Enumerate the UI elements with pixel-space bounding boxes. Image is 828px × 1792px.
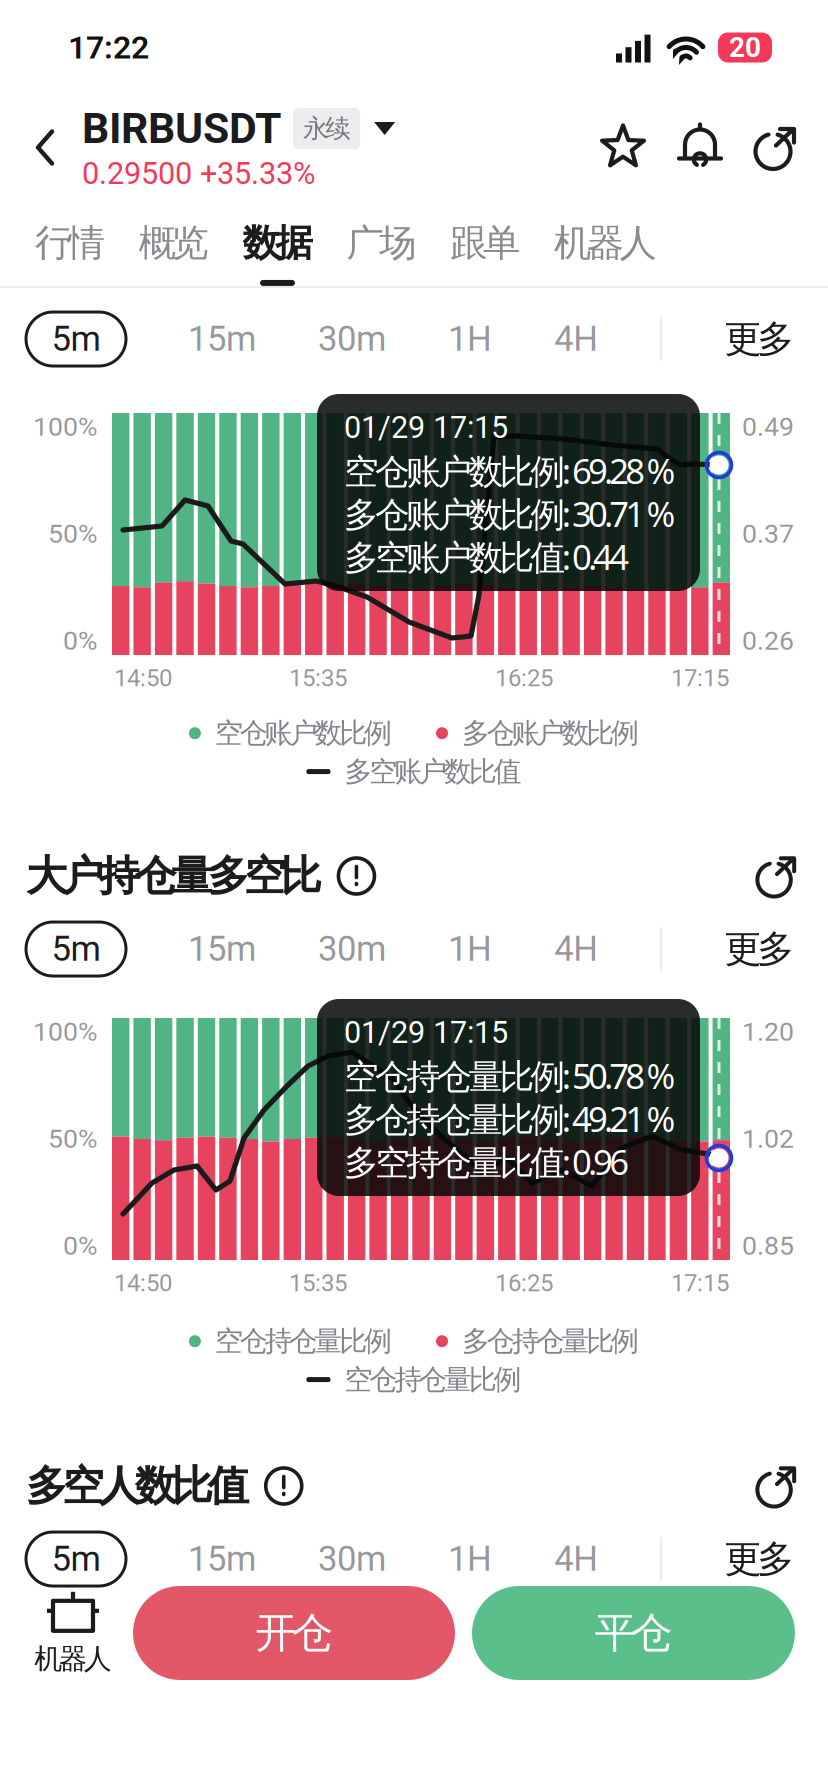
staticText: 概览 — [139, 220, 209, 266]
staticText: 更多 — [724, 1536, 794, 1582]
staticText: 1H — [448, 1539, 492, 1579]
staticText: 30m — [318, 319, 386, 359]
button[interactable]: 机器人 — [18, 1586, 128, 1680]
staticText: 15m — [188, 929, 256, 969]
button[interactable]: Favourite — [586, 122, 662, 172]
button[interactable]: 15m — [188, 1539, 256, 1579]
staticText: 0.26 — [742, 625, 794, 656]
button[interactable]: 15m — [188, 929, 256, 969]
staticText: 多空账户数比值: 0.44 — [344, 533, 629, 579]
staticText: 行情 — [35, 220, 105, 266]
staticText: 空仓账户数比例 — [215, 716, 392, 750]
staticText: 4H — [554, 929, 598, 969]
button[interactable]: Back — [0, 95, 82, 200]
staticText: 0.37 — [742, 518, 794, 549]
staticText: 100% — [33, 411, 98, 442]
staticText: 50% — [48, 518, 98, 549]
button[interactable]: 15m — [188, 319, 256, 359]
button[interactable]: 更多 — [724, 316, 794, 362]
button[interactable]: 4H — [554, 1539, 598, 1579]
button[interactable]: 30m — [318, 929, 386, 969]
button[interactable]: 4H — [554, 929, 598, 969]
staticText: 4H — [554, 319, 598, 359]
staticText: 0.49 — [742, 411, 794, 442]
staticText: 空仓账户数比例: 69.28 % — [344, 447, 675, 493]
staticText: 16:25 — [495, 1269, 553, 1297]
button[interactable]: 开仓 — [133, 1586, 455, 1680]
staticText: 开仓 — [255, 1608, 333, 1658]
staticText: BIRBUSDT — [82, 103, 281, 153]
staticText: 01/29 17:15 — [344, 1014, 508, 1050]
staticText: 机器人 — [554, 220, 657, 266]
staticText: 16:25 — [495, 664, 553, 692]
staticText: 1H — [448, 929, 492, 969]
staticText: 1.02 — [742, 1123, 794, 1154]
staticText: 多仓持仓量比例 — [462, 1324, 639, 1358]
staticText: 永续 — [303, 113, 350, 144]
staticText: 15:35 — [289, 664, 347, 692]
button[interactable]: Share chart — [754, 1464, 798, 1508]
button[interactable]: Share chart — [754, 854, 798, 898]
button[interactable]: 4H — [554, 319, 598, 359]
staticText: 空仓持仓量比例: 50.78 % — [344, 1052, 675, 1098]
button[interactable]: 5m — [26, 922, 126, 976]
button[interactable]: 30m — [318, 1539, 386, 1579]
staticText: 多空账户数比值 — [344, 754, 522, 789]
staticText: 30m — [318, 929, 386, 969]
staticText: 多仓账户数比例: 30.71 % — [344, 490, 675, 536]
staticText: 多仓账户数比例 — [462, 716, 639, 750]
staticText: 15m — [188, 1539, 256, 1579]
staticText: 01/29 17:15 — [344, 409, 508, 445]
staticText: 1H — [448, 319, 492, 359]
staticText: 14:50 — [114, 1269, 172, 1297]
button[interactable]: 平仓 — [472, 1586, 795, 1680]
staticText: 更多 — [724, 926, 794, 972]
button[interactable]: 跟单 — [433, 197, 537, 288]
staticText: 17:22 — [68, 29, 149, 66]
button[interactable]: 机器人 — [537, 197, 674, 288]
staticText: 100% — [33, 1016, 98, 1047]
staticText: 0.29500 +35.33% — [82, 155, 315, 191]
button[interactable]: 广场 — [329, 197, 433, 288]
staticText: 平仓 — [595, 1608, 672, 1658]
button[interactable]: 行情 — [18, 197, 122, 288]
button[interactable]: 30m — [318, 319, 386, 359]
staticText: 14:50 — [114, 664, 172, 692]
staticText: 15m — [188, 319, 256, 359]
button[interactable]: Share — [738, 124, 812, 170]
staticText: 1.20 — [742, 1016, 794, 1047]
staticText: 20 — [729, 31, 761, 64]
button[interactable]: 更多 — [724, 1536, 794, 1582]
button[interactable]: 更多 — [724, 926, 794, 972]
staticText: 0% — [63, 1230, 98, 1261]
staticText: 跟单 — [450, 220, 520, 266]
staticText: 机器人 — [34, 1642, 112, 1676]
button[interactable]: Alerts — [662, 122, 738, 172]
button[interactable]: 概览 — [122, 197, 226, 288]
staticText: 广场 — [346, 220, 416, 266]
button[interactable]: 数据 — [226, 197, 329, 288]
staticText: 多空持仓量比值: 0.96 — [344, 1138, 629, 1184]
staticText: 5m — [51, 929, 100, 969]
staticText: 17:15 — [671, 664, 729, 692]
staticText: 多空人数比值 — [26, 1461, 249, 1511]
staticText: 大户持仓量多空比 — [26, 851, 321, 901]
button[interactable]: 5m — [26, 1532, 126, 1586]
staticText: 50% — [48, 1123, 98, 1154]
staticText: 空仓持仓量比例 — [344, 1362, 522, 1397]
staticText: 30m — [318, 1539, 386, 1579]
staticText: 17:15 — [671, 1269, 729, 1297]
staticText: 4H — [554, 1539, 598, 1579]
staticText: 空仓持仓量比例 — [215, 1324, 392, 1358]
staticText: 5m — [51, 1539, 100, 1579]
button[interactable]: 1H — [448, 319, 492, 359]
staticText: 15:35 — [289, 1269, 347, 1297]
staticText: 5m — [51, 319, 100, 359]
button[interactable]: 5m — [26, 312, 126, 366]
button[interactable]: 1H — [448, 1539, 492, 1579]
staticText: 多仓持仓量比例: 49.21 % — [344, 1095, 675, 1141]
staticText: 0% — [63, 625, 98, 656]
button[interactable]: 1H — [448, 929, 492, 969]
staticText: 数据 — [243, 220, 312, 266]
staticText: 0.85 — [742, 1230, 794, 1261]
